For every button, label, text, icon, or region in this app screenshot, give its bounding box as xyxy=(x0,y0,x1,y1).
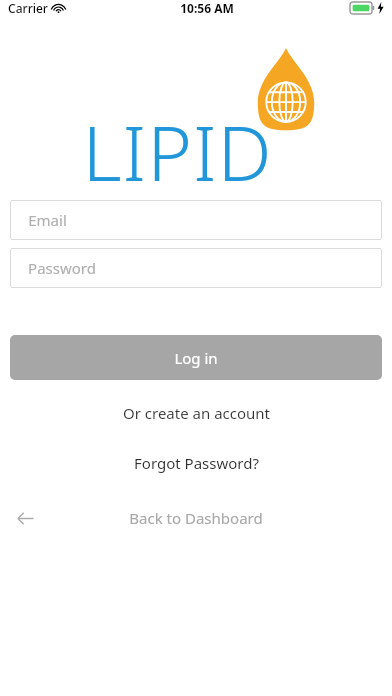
staticText: Carrier xyxy=(8,0,48,16)
staticText: Or create an account xyxy=(123,403,270,423)
button[interactable]: Or create an account xyxy=(0,401,392,425)
button[interactable]: Forgot Password? xyxy=(0,451,392,475)
staticText: Password xyxy=(28,258,96,278)
staticText: Email xyxy=(28,210,67,230)
staticText: LIPID xyxy=(82,100,273,204)
button[interactable]: Email xyxy=(10,200,382,240)
staticText: Forgot Password? xyxy=(134,453,259,473)
button[interactable]: Back xyxy=(8,501,42,535)
staticText: Log in xyxy=(174,348,218,368)
staticText: Back to Dashboard xyxy=(129,508,263,528)
staticText: 10:56 AM xyxy=(180,0,234,16)
button[interactable]: Log in xyxy=(10,335,382,380)
button[interactable]: Back to Dashboard xyxy=(129,508,263,528)
button[interactable]: Password xyxy=(10,248,382,288)
